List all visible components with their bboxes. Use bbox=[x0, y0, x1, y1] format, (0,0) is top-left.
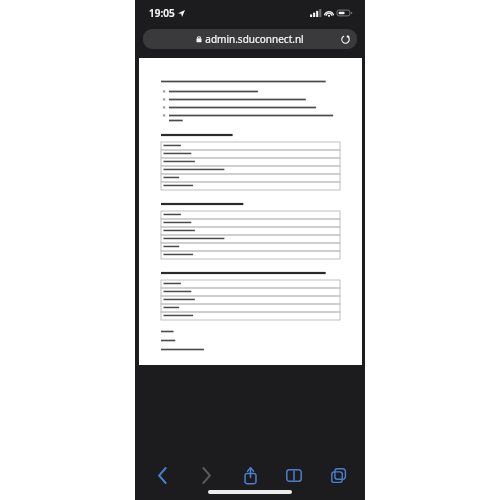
button[interactable] bbox=[161, 142, 340, 190]
button[interactable] bbox=[161, 211, 340, 259]
button[interactable]: Bookmarks bbox=[277, 462, 311, 488]
staticText: admin.sduconnect.nl bbox=[205, 32, 304, 46]
button[interactable]: Tabs bbox=[321, 462, 355, 488]
staticText: 19:05 bbox=[149, 6, 175, 20]
button[interactable] bbox=[161, 280, 340, 320]
button[interactable]: Back bbox=[145, 462, 179, 488]
button[interactable]: admin.sduconnect.nl bbox=[143, 29, 357, 49]
button[interactable]: Share bbox=[233, 462, 267, 488]
button[interactable]: Reload bbox=[338, 32, 352, 46]
button[interactable]: Forward bbox=[189, 462, 223, 488]
